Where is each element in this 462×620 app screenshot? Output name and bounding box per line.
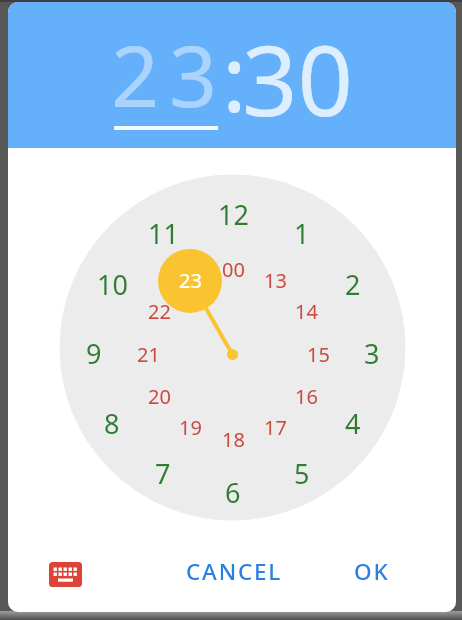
button[interactable]: 10 (90, 262, 134, 306)
button[interactable]: 3 (350, 331, 394, 375)
button[interactable]: 23 (94, 2, 244, 149)
staticText: 13 (264, 267, 287, 294)
staticText: 22 (148, 298, 171, 325)
button[interactable]: 17 (255, 407, 295, 447)
button[interactable]: 21 (128, 334, 168, 374)
button[interactable]: 11 (141, 211, 185, 255)
staticText: 10 (97, 266, 128, 303)
button[interactable]: 5 (280, 451, 324, 495)
button[interactable]: 2 (331, 262, 375, 306)
button[interactable]: 6 (211, 470, 255, 514)
button[interactable]: 12 (211, 192, 255, 236)
button[interactable]: 13 (255, 260, 295, 300)
staticText: 23 (179, 267, 202, 294)
staticText: 11 (148, 215, 179, 252)
staticText: 4 (345, 405, 361, 442)
button[interactable]: 22 (139, 291, 179, 331)
button[interactable]: 4 (331, 401, 375, 445)
staticText: 23 (111, 17, 228, 131)
button[interactable]: 23 (170, 260, 210, 300)
button[interactable]: 14 (286, 291, 326, 331)
button[interactable]: 7 (141, 451, 185, 495)
button[interactable]: 16 (286, 376, 326, 416)
staticText: 2 (345, 266, 361, 303)
staticText: 6 (225, 474, 241, 511)
button[interactable]: 9 (72, 331, 116, 375)
button[interactable]: 18 (213, 419, 253, 459)
button[interactable]: 30 (217, 2, 377, 158)
staticText: 9 (86, 335, 102, 372)
staticText: 20 (148, 383, 171, 410)
staticText: 18 (222, 426, 245, 453)
button[interactable]: 8 (90, 401, 134, 445)
staticText: 3 (364, 335, 380, 372)
button[interactable]: 1 (280, 211, 324, 255)
staticText: 14 (295, 298, 318, 325)
staticText: OK (354, 556, 390, 587)
staticText: 00 (222, 256, 245, 283)
staticText: 8 (104, 405, 120, 442)
staticText: 5 (294, 455, 310, 492)
staticText: 30 (242, 12, 353, 144)
button[interactable]: 15 (298, 334, 338, 374)
staticText: 7 (155, 455, 171, 492)
button[interactable] (43, 556, 87, 592)
button[interactable]: 19 (170, 407, 210, 447)
staticText: 21 (137, 341, 160, 368)
staticText: 15 (307, 341, 330, 368)
staticText: 16 (295, 383, 318, 410)
button[interactable]: 20 (139, 376, 179, 416)
staticText: 12 (218, 196, 249, 233)
staticText: 1 (294, 215, 310, 252)
staticText: 19 (179, 414, 202, 441)
staticText: : (222, 14, 247, 139)
staticText: CANCEL (186, 556, 283, 587)
button[interactable]: CANCEL (174, 511, 294, 612)
button[interactable]: 00 (213, 249, 253, 289)
button[interactable]: OK (332, 531, 412, 611)
staticText: 17 (264, 414, 287, 441)
